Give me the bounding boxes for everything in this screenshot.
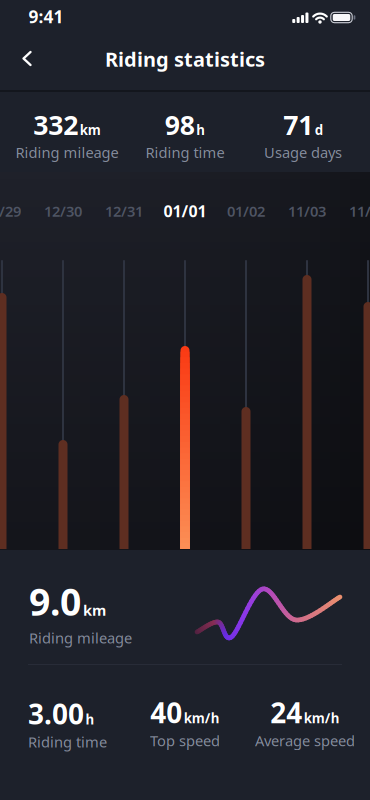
staticText: 12/30 <box>44 201 82 221</box>
staticText: 11/03 <box>288 201 326 221</box>
staticText: d <box>315 121 323 139</box>
button[interactable]: 11/03 <box>288 201 326 221</box>
staticText: Riding mileage <box>29 628 132 647</box>
button[interactable]: 01/01 <box>163 200 206 222</box>
staticText: 01/02 <box>227 201 265 221</box>
staticText: h <box>196 121 205 139</box>
staticText: 01/01 <box>163 200 206 222</box>
staticText: km <box>80 121 101 139</box>
staticText: 11/04 <box>349 201 370 221</box>
staticText: Usage days <box>264 142 342 162</box>
staticText: Riding time <box>145 142 224 162</box>
staticText: km <box>83 600 106 620</box>
staticText: Riding statistics <box>105 46 265 72</box>
staticText: 9:41 <box>28 5 63 28</box>
staticText: 98 <box>165 107 195 142</box>
staticText: 71 <box>283 107 313 142</box>
staticText: 40 <box>150 694 182 731</box>
button[interactable]: 12/29 <box>0 201 21 221</box>
staticText: 332 <box>33 107 78 142</box>
staticText: 12/31 <box>105 201 143 221</box>
staticText: km/h <box>304 709 340 727</box>
staticText: Riding time <box>28 732 107 752</box>
button[interactable]: 01/02 <box>227 201 265 221</box>
staticText: Riding mileage <box>15 142 118 162</box>
staticText: 24 <box>270 694 302 731</box>
staticText: 3.00 <box>28 695 84 732</box>
staticText: 9.0 <box>29 576 81 626</box>
staticText: Average speed <box>255 731 355 750</box>
button[interactable]: 12/30 <box>44 201 82 221</box>
button[interactable]: 11/04 <box>349 201 370 221</box>
button[interactable]: Back <box>12 41 44 77</box>
staticText: 12/29 <box>0 201 21 221</box>
staticText: km/h <box>184 709 220 727</box>
staticText: Top speed <box>150 731 220 750</box>
staticText: h <box>85 710 94 728</box>
button[interactable]: 12/31 <box>105 201 143 221</box>
